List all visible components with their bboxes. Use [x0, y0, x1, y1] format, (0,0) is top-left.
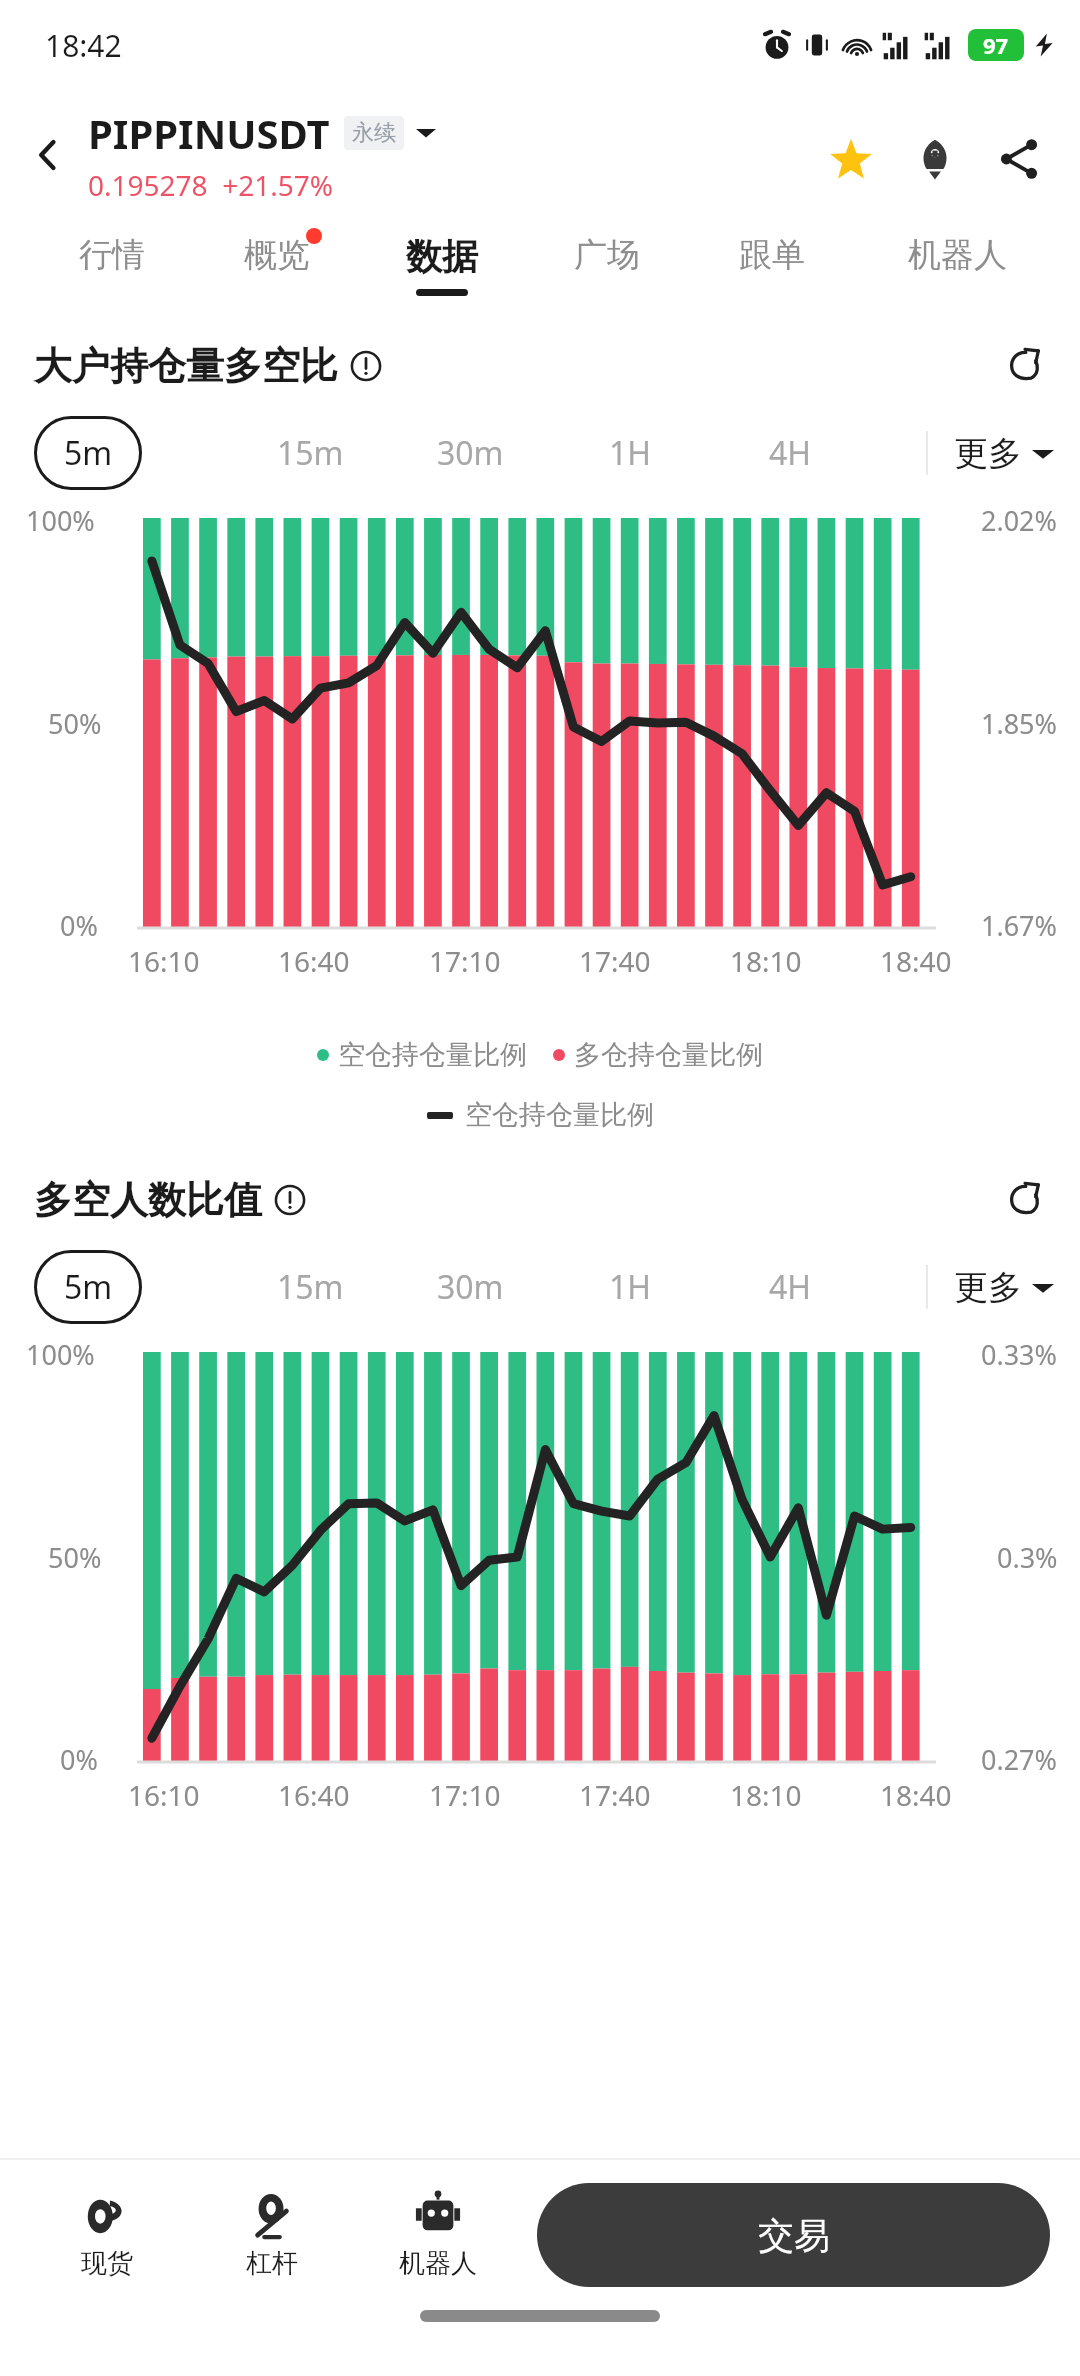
- staticText: 多空人数比值: [34, 1176, 262, 1224]
- staticText: 15m: [277, 431, 344, 475]
- staticText: 18:42: [45, 25, 122, 66]
- button[interactable]: 现货: [24, 2160, 189, 2310]
- button[interactable]: Alerts: [902, 126, 968, 192]
- staticText: 1H: [609, 431, 652, 475]
- button[interactable]: 15m: [230, 1250, 390, 1324]
- staticText: 5m: [64, 1265, 113, 1309]
- button[interactable]: 更多: [954, 1266, 1054, 1309]
- staticText: 行情: [79, 234, 145, 276]
- staticText: 18:40: [880, 1776, 952, 1814]
- button[interactable]: Share: [986, 126, 1052, 192]
- staticText: 4H: [769, 1265, 812, 1309]
- button[interactable]: 15m: [230, 416, 390, 490]
- button[interactable]: 5m: [34, 1250, 142, 1324]
- button[interactable]: 概览: [194, 220, 359, 320]
- button[interactable]: 机器人: [355, 2160, 521, 2310]
- staticText: 更多: [954, 1266, 1022, 1309]
- staticText: 50%: [48, 1539, 102, 1576]
- staticText: 大户持仓量多空比: [34, 342, 338, 390]
- staticText: 杠杆: [246, 2247, 298, 2280]
- staticText: 17:40: [579, 942, 651, 980]
- staticText: 概览: [244, 234, 310, 276]
- button[interactable]: 5m: [34, 416, 142, 490]
- staticText: 0%: [60, 1741, 98, 1778]
- staticText: 17:10: [429, 942, 501, 980]
- button[interactable]: 更多: [954, 432, 1054, 475]
- staticText: 空仓持仓量比例: [465, 1098, 654, 1132]
- staticText: 0.195278 +21.57%: [88, 166, 334, 204]
- staticText: 更多: [954, 432, 1022, 475]
- staticText: 0.3%: [997, 1539, 1058, 1576]
- staticText: 18:10: [730, 942, 802, 980]
- staticText: 16:40: [278, 1776, 350, 1814]
- staticText: 16:40: [278, 942, 350, 980]
- staticText: 18:40: [880, 942, 952, 980]
- button[interactable]: 杠杆: [189, 2160, 355, 2310]
- staticText: 跟单: [739, 234, 805, 276]
- button[interactable]: 30m: [390, 416, 550, 490]
- button[interactable]: Open full chart: [994, 338, 1050, 394]
- button[interactable]: Back: [18, 125, 78, 185]
- button[interactable]: 行情: [30, 220, 194, 320]
- button[interactable]: 跟单: [689, 220, 854, 320]
- staticText: 机器人: [399, 2247, 477, 2280]
- staticText: 0%: [60, 907, 98, 944]
- staticText: 数据: [406, 234, 478, 279]
- staticText: 17:40: [579, 1776, 651, 1814]
- button[interactable]: 30m: [390, 1250, 550, 1324]
- button[interactable]: 机器人: [854, 220, 1060, 320]
- button[interactable]: 1H: [550, 416, 710, 490]
- staticText: 1H: [609, 1265, 652, 1309]
- staticText: 30m: [437, 1265, 504, 1309]
- staticText: 广场: [574, 234, 640, 276]
- staticText: 15m: [277, 1265, 344, 1309]
- staticText: 0.33%: [981, 1336, 1058, 1373]
- button[interactable]: Favorite: [818, 126, 884, 192]
- staticText: 16:10: [128, 1776, 200, 1814]
- button[interactable]: 广场: [524, 220, 689, 320]
- staticText: 16:10: [128, 942, 200, 980]
- staticText: 100%: [26, 502, 95, 539]
- button[interactable]: 4H: [710, 1250, 870, 1324]
- staticText: 17:10: [429, 1776, 501, 1814]
- staticText: 机器人: [908, 234, 1007, 276]
- staticText: 100%: [26, 1336, 95, 1373]
- button[interactable]: Open full chart: [994, 1172, 1050, 1228]
- button[interactable]: 1H: [550, 1250, 710, 1324]
- staticText: 50%: [48, 705, 102, 742]
- staticText: 多仓持仓量比例: [574, 1038, 763, 1072]
- staticText: 18:10: [730, 1776, 802, 1814]
- staticText: 97: [983, 30, 1009, 60]
- staticText: 5m: [64, 431, 113, 475]
- staticText: 永续: [352, 119, 396, 147]
- staticText: 2.02%: [981, 502, 1058, 539]
- staticText: 空仓持仓量比例: [338, 1038, 527, 1072]
- button[interactable]: 4H: [710, 416, 870, 490]
- staticText: 现货: [81, 2247, 133, 2280]
- staticText: 1.85%: [981, 705, 1058, 742]
- button[interactable]: 数据: [359, 220, 524, 320]
- staticText: 交易: [758, 2213, 830, 2258]
- staticText: 4H: [769, 431, 812, 475]
- staticText: 30m: [437, 431, 504, 475]
- staticText: 1.67%: [981, 907, 1058, 944]
- staticText: 0.27%: [981, 1741, 1058, 1778]
- button[interactable]: 交易: [537, 2183, 1050, 2287]
- staticText: PIPPINUSDT: [88, 106, 330, 160]
